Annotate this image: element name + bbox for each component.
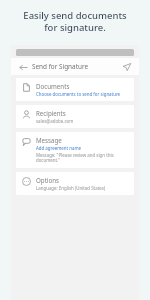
staticText: sales@adobe.com bbox=[36, 118, 74, 124]
staticText: Options bbox=[36, 176, 59, 184]
staticText: Documents bbox=[36, 82, 70, 90]
staticText: Language: English (United States) bbox=[36, 185, 106, 191]
button[interactable]: Recipients bbox=[16, 105, 134, 128]
button[interactable]: Message bbox=[16, 132, 134, 168]
button[interactable]: Options bbox=[16, 172, 134, 195]
button[interactable]: Documents bbox=[16, 78, 134, 101]
staticText: Send for Signature bbox=[32, 62, 89, 71]
staticText: Message bbox=[36, 136, 62, 144]
button[interactable]: Send bbox=[121, 61, 133, 73]
staticText: Message: "Please review and sign this do… bbox=[36, 152, 114, 164]
button[interactable]: Back bbox=[17, 61, 29, 73]
staticText: Easily send documents for signature. bbox=[14, 9, 136, 34]
staticText: Choose documents to send for signature bbox=[36, 91, 121, 97]
staticText: Recipients bbox=[36, 109, 66, 117]
staticText: Add agreement name bbox=[36, 145, 81, 151]
